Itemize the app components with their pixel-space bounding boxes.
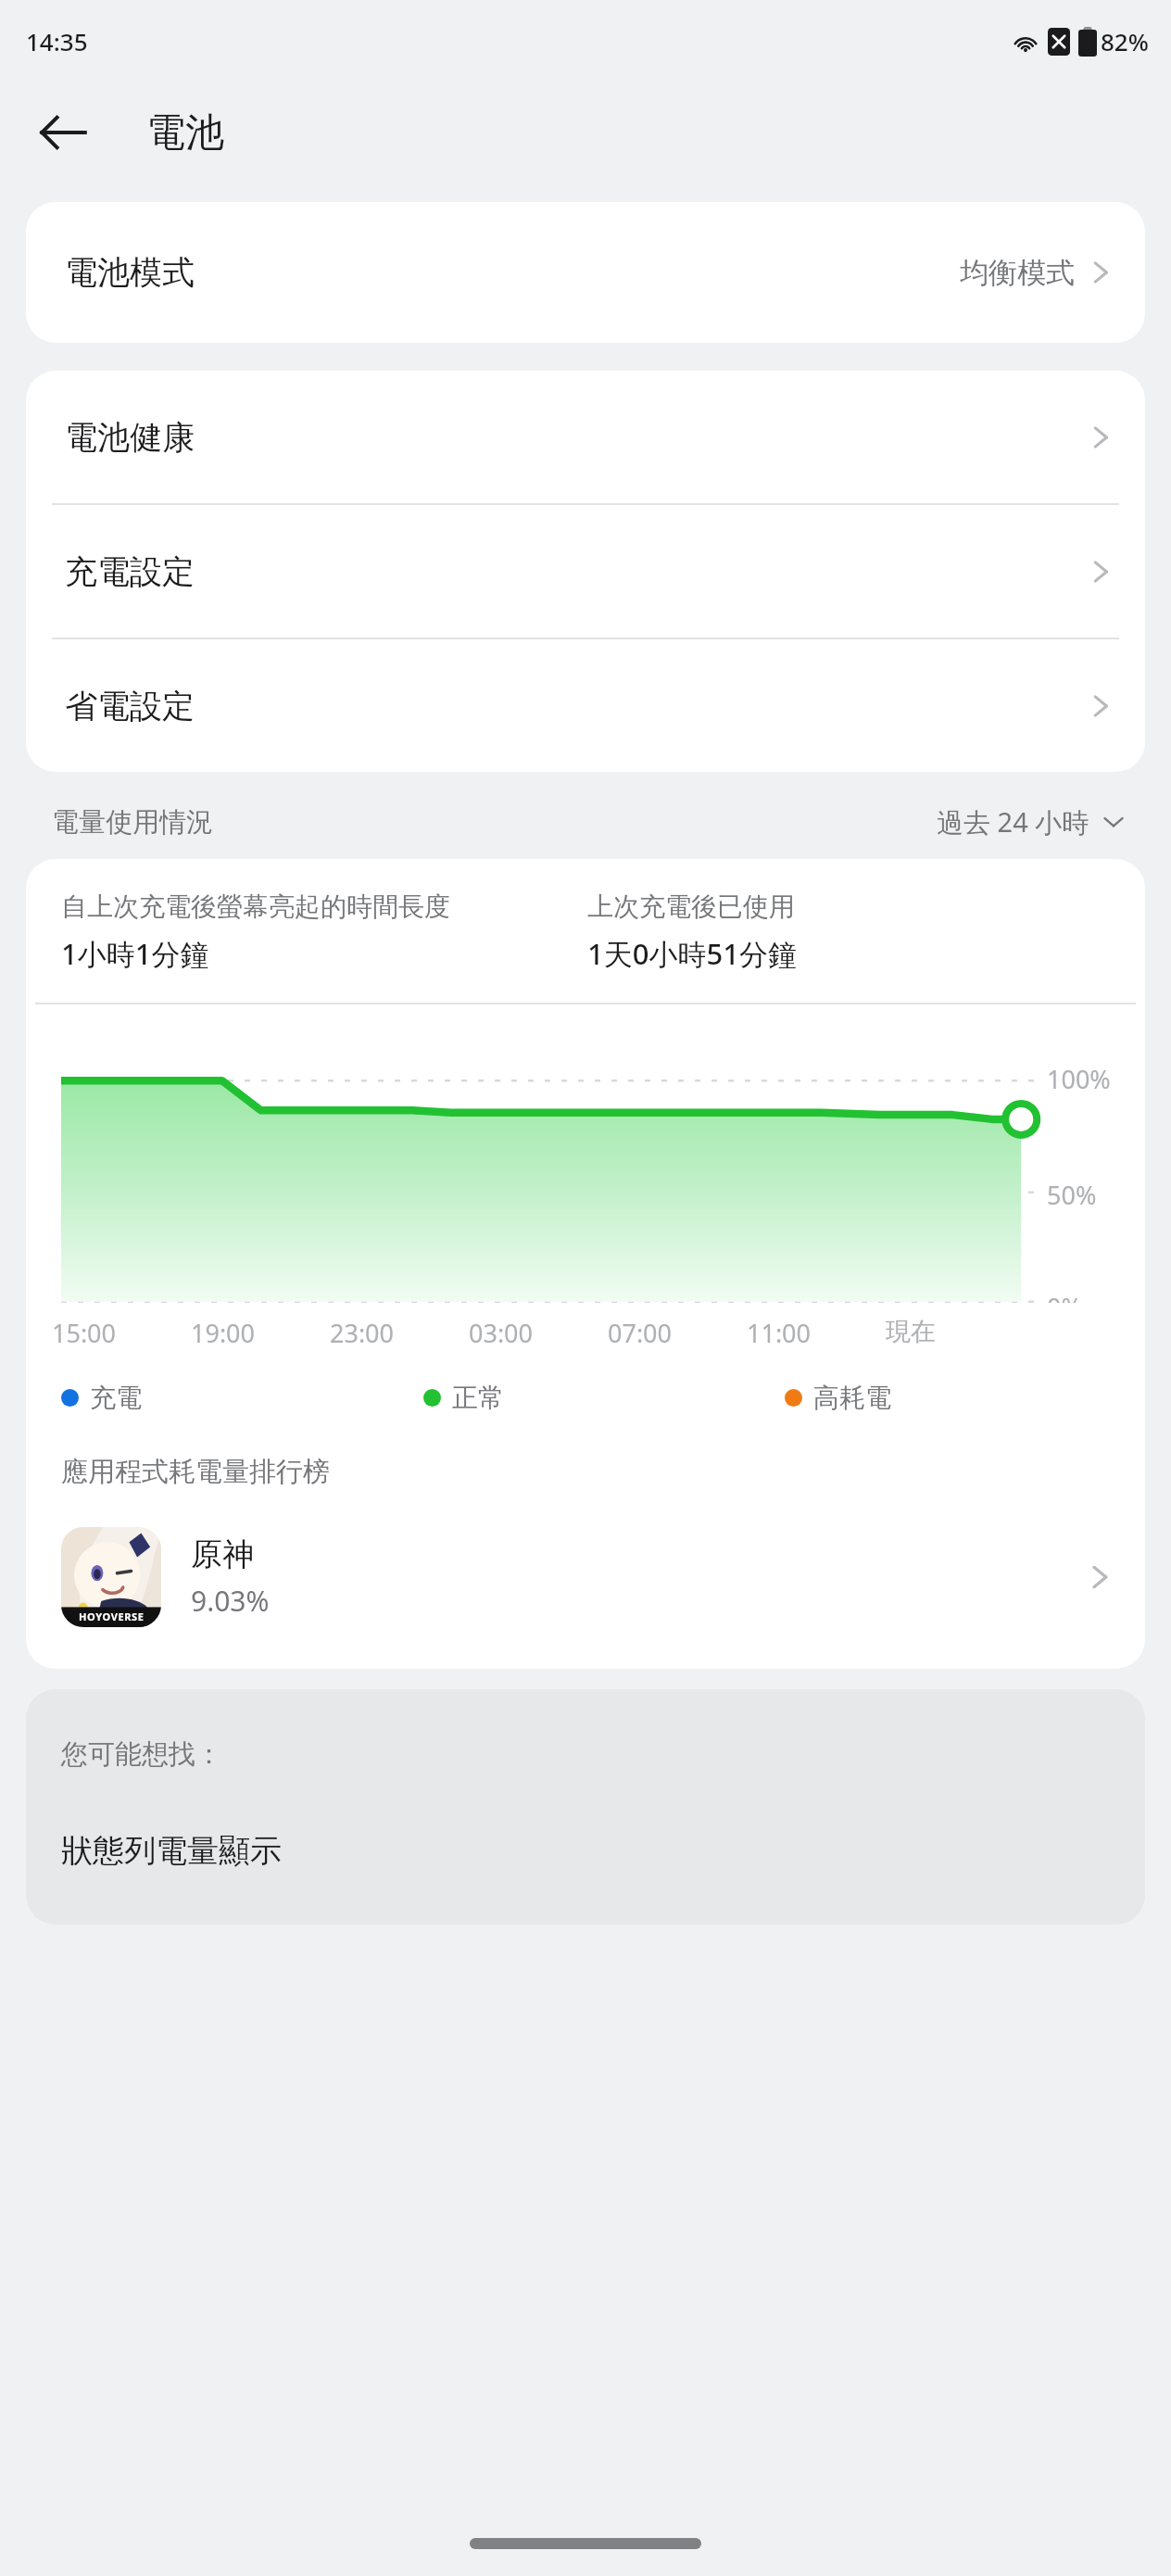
staticText: 電量使用情況 [52, 805, 213, 840]
button[interactable]: 返回 [20, 90, 106, 175]
button[interactable]: 狀態列電量顯示 [26, 1825, 1145, 1876]
staticText: 應用程式耗電量排行榜 [61, 1455, 330, 1489]
button[interactable]: 過去 24 小時 [937, 803, 1127, 840]
button[interactable]: 充電設定 [26, 505, 1145, 638]
staticText: 您可能想找： [61, 1737, 222, 1772]
staticText: 電池 [146, 108, 224, 158]
staticText: 11:00 [747, 1316, 812, 1350]
staticText: 50% [1047, 1178, 1097, 1212]
staticText: HOYOVERSE [79, 1610, 145, 1623]
staticText: 高耗電 [813, 1382, 891, 1414]
staticText: 0% [1047, 1290, 1082, 1303]
staticText: 9.03% [191, 1582, 270, 1620]
staticText: 電池健康 [65, 417, 195, 458]
staticText: 過去 24 小時 [937, 803, 1089, 840]
button[interactable]: 省電設定 [26, 639, 1145, 772]
button[interactable]: 電池健康 [26, 371, 1145, 503]
staticText: 原神 [191, 1534, 254, 1574]
staticText: 1小時1分鐘 [61, 934, 209, 973]
staticText: 均衡模式 [960, 255, 1075, 291]
button[interactable]: HOYOVERSE [26, 1517, 1145, 1637]
staticText: 82% [1101, 25, 1149, 57]
staticText: 正常 [452, 1382, 504, 1414]
staticText: 15:00 [52, 1316, 117, 1350]
staticText: 充電設定 [65, 551, 195, 592]
staticText: 電池模式 [65, 252, 195, 293]
staticText: 100% [1047, 1062, 1111, 1096]
staticText: 19:00 [191, 1316, 256, 1350]
staticText: 上次充電後已使用 [587, 890, 795, 923]
staticText: 1天0小時51分鐘 [587, 934, 797, 973]
staticText: 自上次充電後螢幕亮起的時間長度 [61, 890, 450, 923]
staticText: 省電設定 [65, 686, 195, 726]
staticText: 23:00 [330, 1316, 395, 1350]
staticText: 07:00 [608, 1316, 673, 1350]
button[interactable]: 電池模式 [26, 202, 1145, 343]
staticText: 現在 [886, 1316, 936, 1347]
staticText: 03:00 [469, 1316, 534, 1350]
staticText: 狀態列電量顯示 [61, 1831, 282, 1871]
staticText: 充電 [90, 1382, 142, 1414]
staticText: 14:35 [26, 25, 88, 57]
